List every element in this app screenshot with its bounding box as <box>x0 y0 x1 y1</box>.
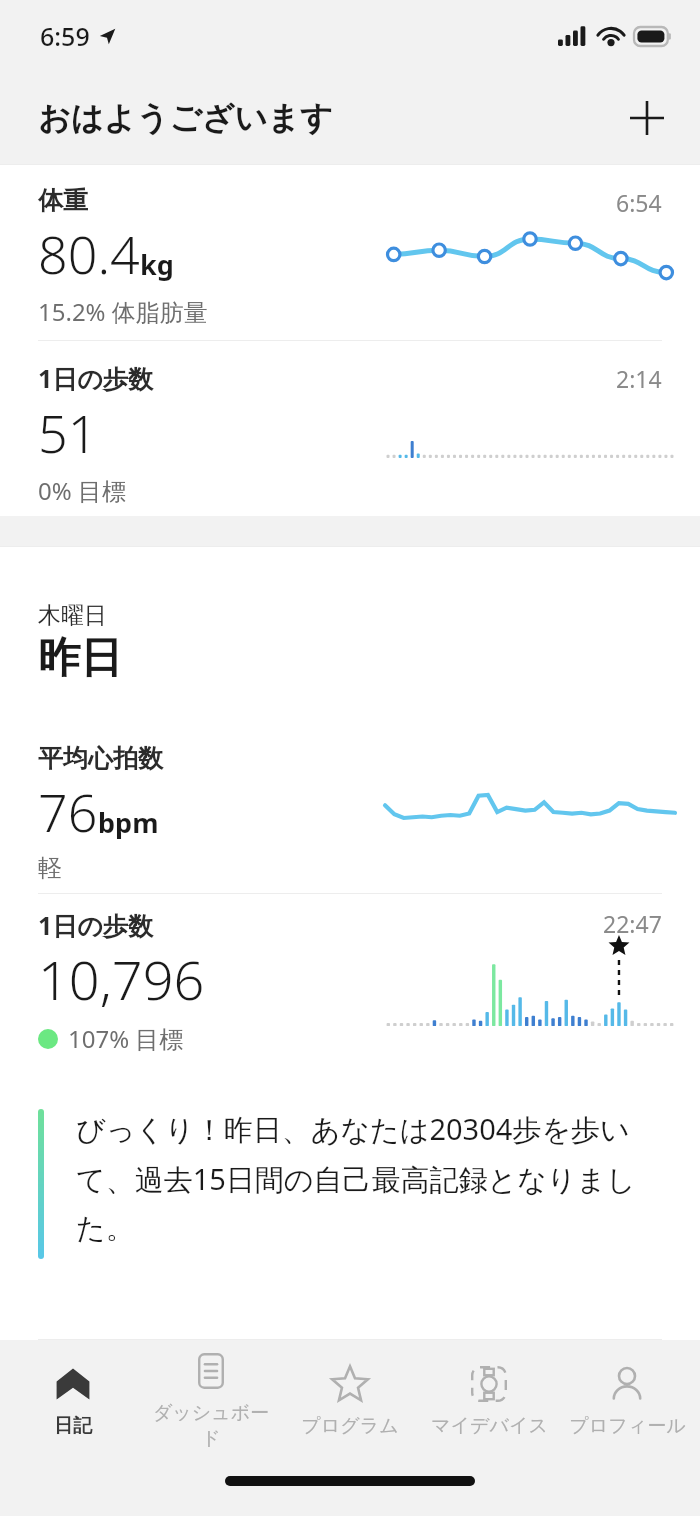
staticText: おはようございます <box>38 98 333 138</box>
staticText: マイデバイス <box>431 1414 548 1438</box>
staticText: 平均心拍数 <box>38 743 163 774</box>
staticText: プログラム <box>301 1414 399 1438</box>
staticText: 107% 目標 <box>68 1022 184 1055</box>
staticText: 10,796 <box>38 942 205 1016</box>
staticText: 22:47 <box>603 908 662 939</box>
staticText: 体重 <box>38 185 88 216</box>
button[interactable]: 平均心拍数 <box>0 723 700 893</box>
staticText: 軽 <box>38 853 62 883</box>
button[interactable]: プロフィール <box>561 1340 693 1460</box>
button[interactable]: 2:14 <box>0 341 700 516</box>
staticText: bpm <box>98 804 159 841</box>
staticText: 0% 目標 <box>38 474 126 507</box>
button[interactable]: 6:54 <box>0 165 700 340</box>
staticText: 15.2% 体脂肪量 <box>38 295 208 328</box>
staticText: 6:54 <box>616 187 662 218</box>
staticText: ダッシュボード <box>145 1401 277 1451</box>
staticText: 1日の歩数 <box>38 908 153 942</box>
staticText: 木曜日 <box>38 601 107 630</box>
staticText: 76 <box>38 776 98 847</box>
button[interactable]: プログラム <box>284 1340 416 1460</box>
button[interactable]: 22:47 <box>0 894 700 1079</box>
button[interactable]: びっくり！昨日、あなたは20304歩を歩いて、過去15日間の自己最高記録となりま… <box>38 1109 662 1259</box>
staticText: 日記 <box>54 1414 92 1438</box>
button[interactable]: 日記 <box>7 1340 139 1460</box>
staticText: 6:59 <box>40 19 90 53</box>
staticText: 51 <box>38 397 98 468</box>
staticText: びっくり！昨日、あなたは20304歩を歩いて、過去15日間の自己最高記録となりま… <box>76 1109 662 1246</box>
button[interactable]: Add <box>616 87 678 149</box>
staticText: 80.4 <box>38 218 140 289</box>
staticText: 2:14 <box>616 363 662 394</box>
staticText: プロフィール <box>569 1414 686 1438</box>
button[interactable]: マイデバイス <box>423 1340 555 1460</box>
staticText: kg <box>140 246 174 283</box>
button[interactable]: ダッシュボード <box>145 1340 277 1460</box>
staticText: 1日の歩数 <box>38 361 153 395</box>
staticText: 昨日 <box>38 632 122 685</box>
